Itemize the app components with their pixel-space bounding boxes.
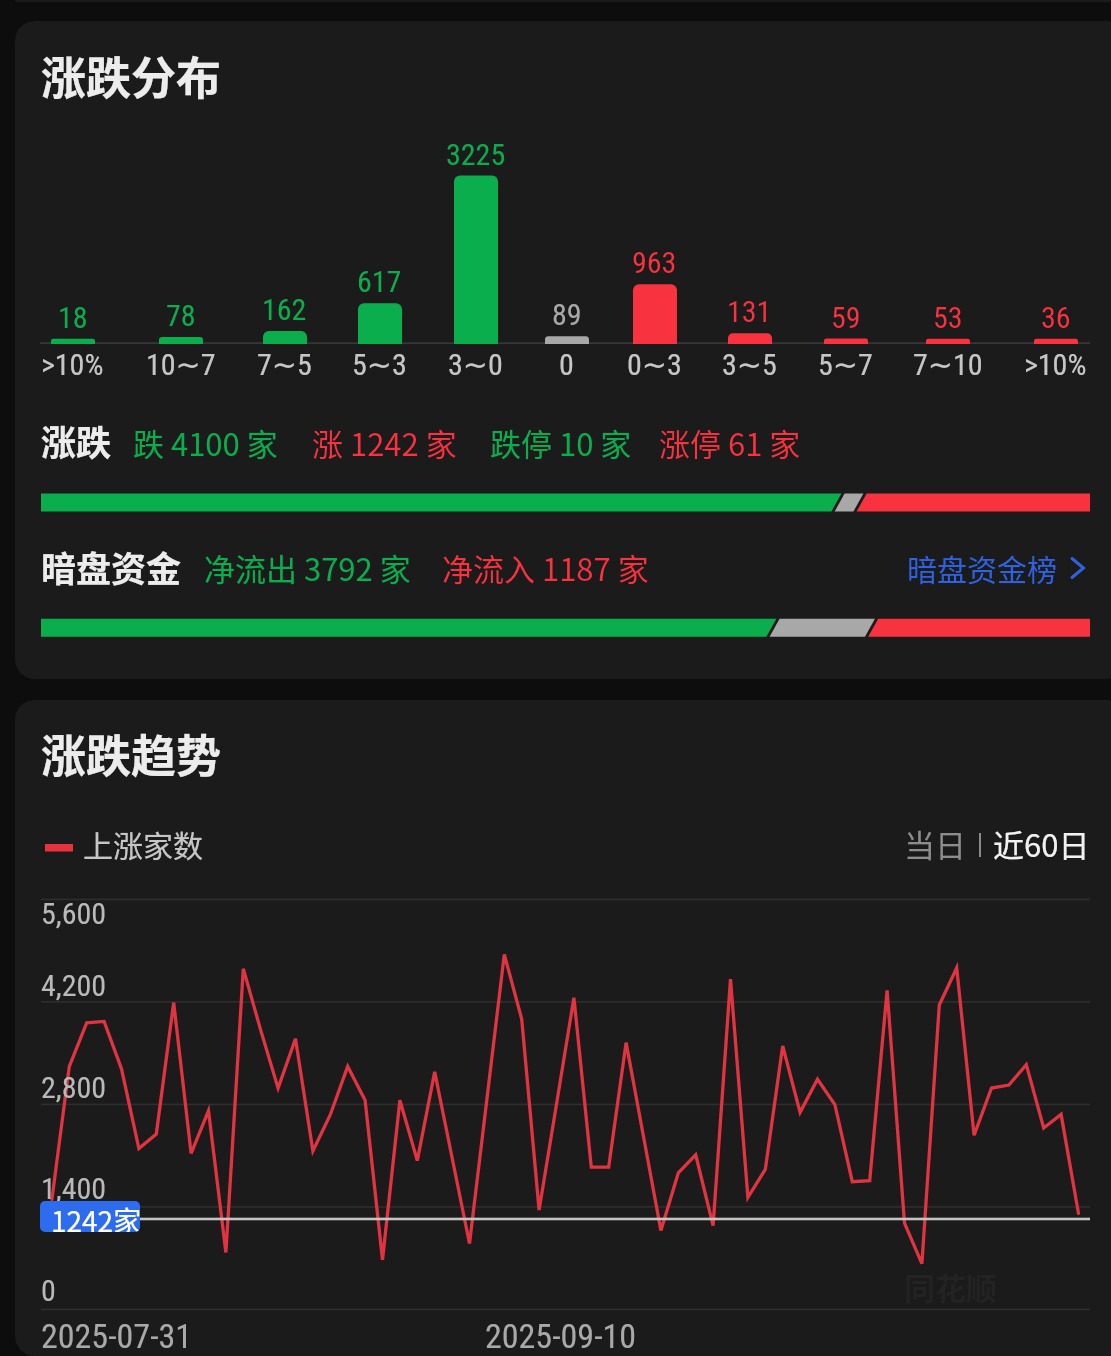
button[interactable]: 涨跌统计 (40, 415, 870, 515)
button[interactable]: 上涨家数 (41, 822, 206, 868)
staticText: 近60日 (993, 821, 1090, 866)
staticText: 10∼7 (146, 347, 216, 382)
staticText: 3225 (446, 137, 506, 172)
staticText: 上涨家数 (83, 822, 203, 865)
staticText: 涨跌 (41, 415, 112, 466)
staticText: 净流入 1187 家 (442, 545, 649, 590)
staticText: 131 (727, 294, 772, 329)
button[interactable]: 暗盘资金统计 (40, 540, 870, 640)
staticText: 暗盘资金榜 (907, 546, 1057, 589)
staticText: 617 (357, 264, 402, 299)
staticText: 暗盘资金 (41, 541, 182, 592)
staticText: 跌 4100 家 (133, 420, 278, 465)
staticText: 涨 1242 家 (312, 420, 457, 465)
staticText: 5∼7 (818, 347, 873, 382)
button[interactable]: 近60日 (988, 818, 1092, 868)
staticText: 1,400 (41, 1171, 107, 1206)
staticText: 78 (166, 298, 196, 333)
staticText: 0 (559, 347, 574, 382)
staticText: 当日 (904, 821, 966, 866)
button[interactable]: 当日 (898, 820, 968, 868)
staticText: 3∼0 (448, 347, 503, 382)
staticText: 36 (1041, 300, 1071, 335)
staticText: 2025-07-31 (41, 1316, 193, 1356)
staticText: 跌停 10 家 (490, 420, 632, 465)
staticText: 18 (58, 300, 88, 335)
staticText: 1242家 (51, 1201, 140, 1232)
staticText: 涨跌趋势 (41, 721, 222, 786)
other: 暗盘资金榜 (1070, 556, 1086, 580)
staticText: 3∼5 (722, 347, 777, 382)
staticText: 4,200 (41, 968, 107, 1003)
staticText: 7∼10 (913, 347, 983, 382)
staticText: 涨跌分布 (41, 43, 222, 108)
staticText: 0∼3 (627, 347, 682, 382)
staticText: 同花顺 (904, 1264, 997, 1309)
staticText: 0 (41, 1273, 56, 1308)
staticText: 162 (262, 292, 307, 327)
staticText: 2025-09-10 (485, 1316, 637, 1356)
staticText: 净流出 3792 家 (204, 545, 411, 590)
staticText: >10% (41, 347, 104, 382)
staticText: >10% (1024, 347, 1087, 382)
staticText: 89 (552, 297, 582, 332)
staticText: 53 (933, 300, 963, 335)
staticText: 2,800 (41, 1070, 107, 1105)
staticText: 963 (632, 245, 677, 280)
button[interactable]: 暗盘资金榜 (895, 535, 1095, 590)
staticText: 5∼3 (352, 347, 407, 382)
staticText: 5,600 (41, 896, 107, 931)
staticText: 59 (831, 300, 861, 335)
staticText: 7∼5 (257, 347, 312, 382)
staticText: 涨停 61 家 (659, 420, 801, 465)
